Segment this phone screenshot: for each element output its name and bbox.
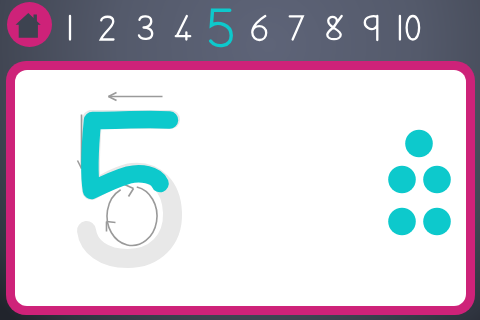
button[interactable] [316, 0, 352, 52]
button[interactable] [52, 0, 88, 52]
button[interactable] [202, 0, 238, 52]
button[interactable] [89, 0, 125, 52]
button[interactable] [15, 70, 466, 306]
button[interactable]: Home [7, 2, 52, 47]
button[interactable] [127, 0, 163, 52]
button[interactable] [278, 0, 314, 52]
button[interactable] [354, 0, 390, 52]
button[interactable] [392, 0, 428, 52]
button[interactable] [165, 0, 201, 52]
button[interactable] [241, 0, 277, 52]
